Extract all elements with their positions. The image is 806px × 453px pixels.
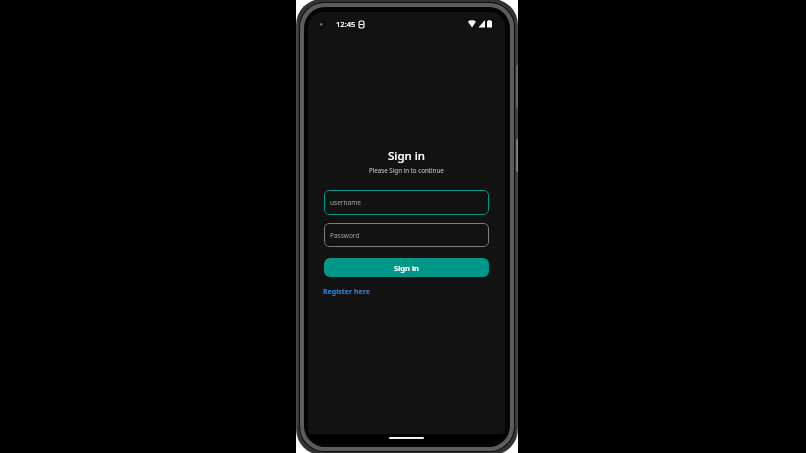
button[interactable]: Sign in xyxy=(324,258,489,277)
button[interactable]: Register here xyxy=(323,287,370,297)
staticText: username xyxy=(330,198,361,207)
staticText: 12:45 xyxy=(336,19,356,29)
staticText: Sign in xyxy=(388,148,426,164)
staticText: Sign in xyxy=(394,263,419,273)
staticText: Register here xyxy=(323,287,370,297)
staticText: Password xyxy=(330,231,360,240)
button[interactable]: username xyxy=(324,190,489,215)
staticText: Please Sign in to continue xyxy=(369,166,444,174)
button[interactable]: Password xyxy=(324,223,489,247)
